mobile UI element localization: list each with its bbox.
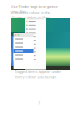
staticText: Use Finder tags to organise your files [10,4,57,14]
staticText: Choose a colour in the Finder sidebar to… [12,10,50,20]
staticText: 7 [38,100,40,106]
staticText: Tagged items appear under every colour y… [14,69,61,79]
